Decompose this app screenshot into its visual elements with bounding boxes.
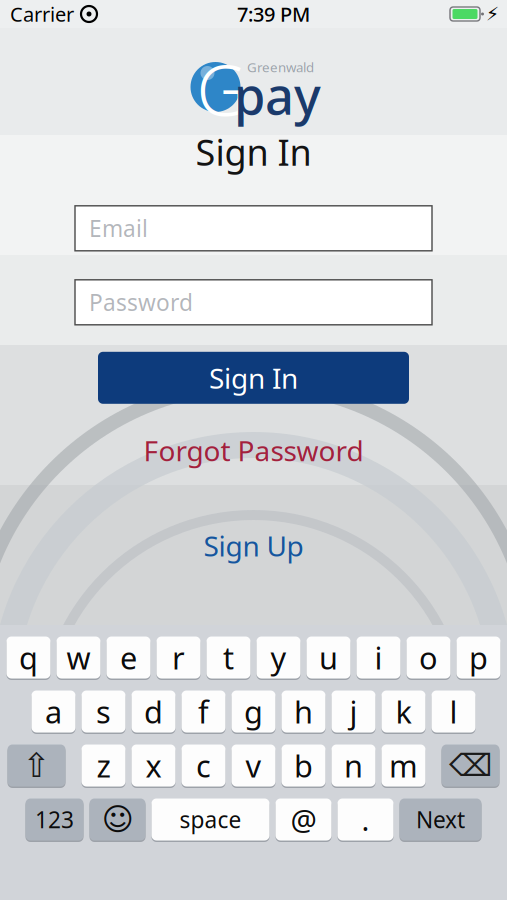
button[interactable]: w (56, 635, 100, 680)
staticText: c (196, 745, 211, 786)
button[interactable]: a (31, 689, 75, 734)
staticText: x (145, 745, 161, 786)
button[interactable]: s (81, 689, 125, 734)
button[interactable]: t (206, 635, 250, 680)
button[interactable]: v (231, 743, 275, 788)
staticText: e (120, 637, 137, 678)
button[interactable]: Forgot Password (131, 426, 375, 475)
staticText: 123 (35, 804, 74, 834)
staticText: Email (89, 213, 148, 243)
staticText: j (349, 691, 357, 732)
button[interactable]: q (6, 635, 50, 680)
button[interactable]: Sign Up (191, 521, 315, 570)
button[interactable]: l (431, 689, 475, 734)
button[interactable]: @ (275, 797, 331, 842)
staticText: f (198, 691, 209, 732)
button[interactable]: z (81, 743, 125, 788)
staticText: Next (416, 804, 465, 834)
button[interactable]: p (456, 635, 500, 680)
button[interactable]: n (331, 743, 375, 788)
button[interactable]: Sign In (98, 352, 409, 404)
staticText: g (244, 691, 263, 732)
button[interactable]: e (106, 635, 150, 680)
button[interactable]: ☺ (89, 797, 145, 842)
staticText: Sign In (195, 128, 311, 176)
button[interactable]: f (181, 689, 225, 734)
staticText: b (294, 745, 313, 786)
staticText: Sign Up (203, 527, 303, 564)
staticText: Password (89, 287, 193, 317)
staticText: i (374, 637, 382, 678)
button[interactable]: r (156, 635, 200, 680)
staticText: l (449, 691, 457, 732)
staticText: d (144, 691, 163, 732)
staticText: G (196, 43, 246, 135)
button[interactable]: k (381, 689, 425, 734)
button[interactable]: . (337, 797, 393, 842)
button[interactable]: Delete (441, 743, 499, 788)
staticText: o (419, 637, 438, 678)
staticText: 7:39 PM (237, 1, 310, 27)
button[interactable]: Email (75, 206, 432, 251)
staticText: t (223, 637, 234, 678)
button[interactable]: space (151, 797, 269, 842)
button[interactable]: b (281, 743, 325, 788)
staticText: Sign In (209, 359, 298, 396)
staticText: @ (290, 800, 316, 839)
staticText: ☺ (101, 802, 133, 837)
staticText: r (172, 637, 185, 678)
button[interactable]: u (306, 635, 350, 680)
staticText: space (179, 804, 241, 834)
button[interactable]: Next (399, 797, 481, 842)
staticText: p (469, 637, 488, 678)
button[interactable]: h (281, 689, 325, 734)
staticText: v (245, 745, 261, 786)
button[interactable]: o (406, 635, 450, 680)
staticText: ⌫ (449, 748, 492, 783)
staticText: Forgot Password (143, 432, 363, 469)
staticText: a (45, 691, 62, 732)
staticText: k (395, 691, 411, 732)
staticText: n (344, 745, 363, 786)
staticText: . (361, 800, 369, 839)
staticText: z (96, 745, 110, 786)
button[interactable]: 123 (25, 797, 83, 842)
staticText: m (389, 745, 418, 786)
button[interactable]: m (381, 743, 425, 788)
button[interactable]: Shift (7, 743, 65, 788)
button[interactable]: j (331, 689, 375, 734)
button[interactable]: y (256, 635, 300, 680)
staticText: w (66, 637, 90, 678)
staticText: ⚡︎ (486, 3, 499, 25)
button[interactable]: i (356, 635, 400, 680)
staticText: q (19, 637, 38, 678)
staticText: y (270, 637, 286, 678)
staticText: ⇧ (22, 747, 50, 784)
staticText: Carrier (10, 1, 74, 27)
button[interactable]: d (131, 689, 175, 734)
staticText: Greenwald (247, 58, 314, 76)
staticText: pay (234, 61, 321, 129)
staticText: s (96, 691, 111, 732)
staticText: u (319, 637, 338, 678)
button[interactable]: Password (75, 280, 432, 325)
staticText: h (294, 691, 313, 732)
button[interactable]: g (231, 689, 275, 734)
button[interactable]: x (131, 743, 175, 788)
button[interactable]: c (181, 743, 225, 788)
